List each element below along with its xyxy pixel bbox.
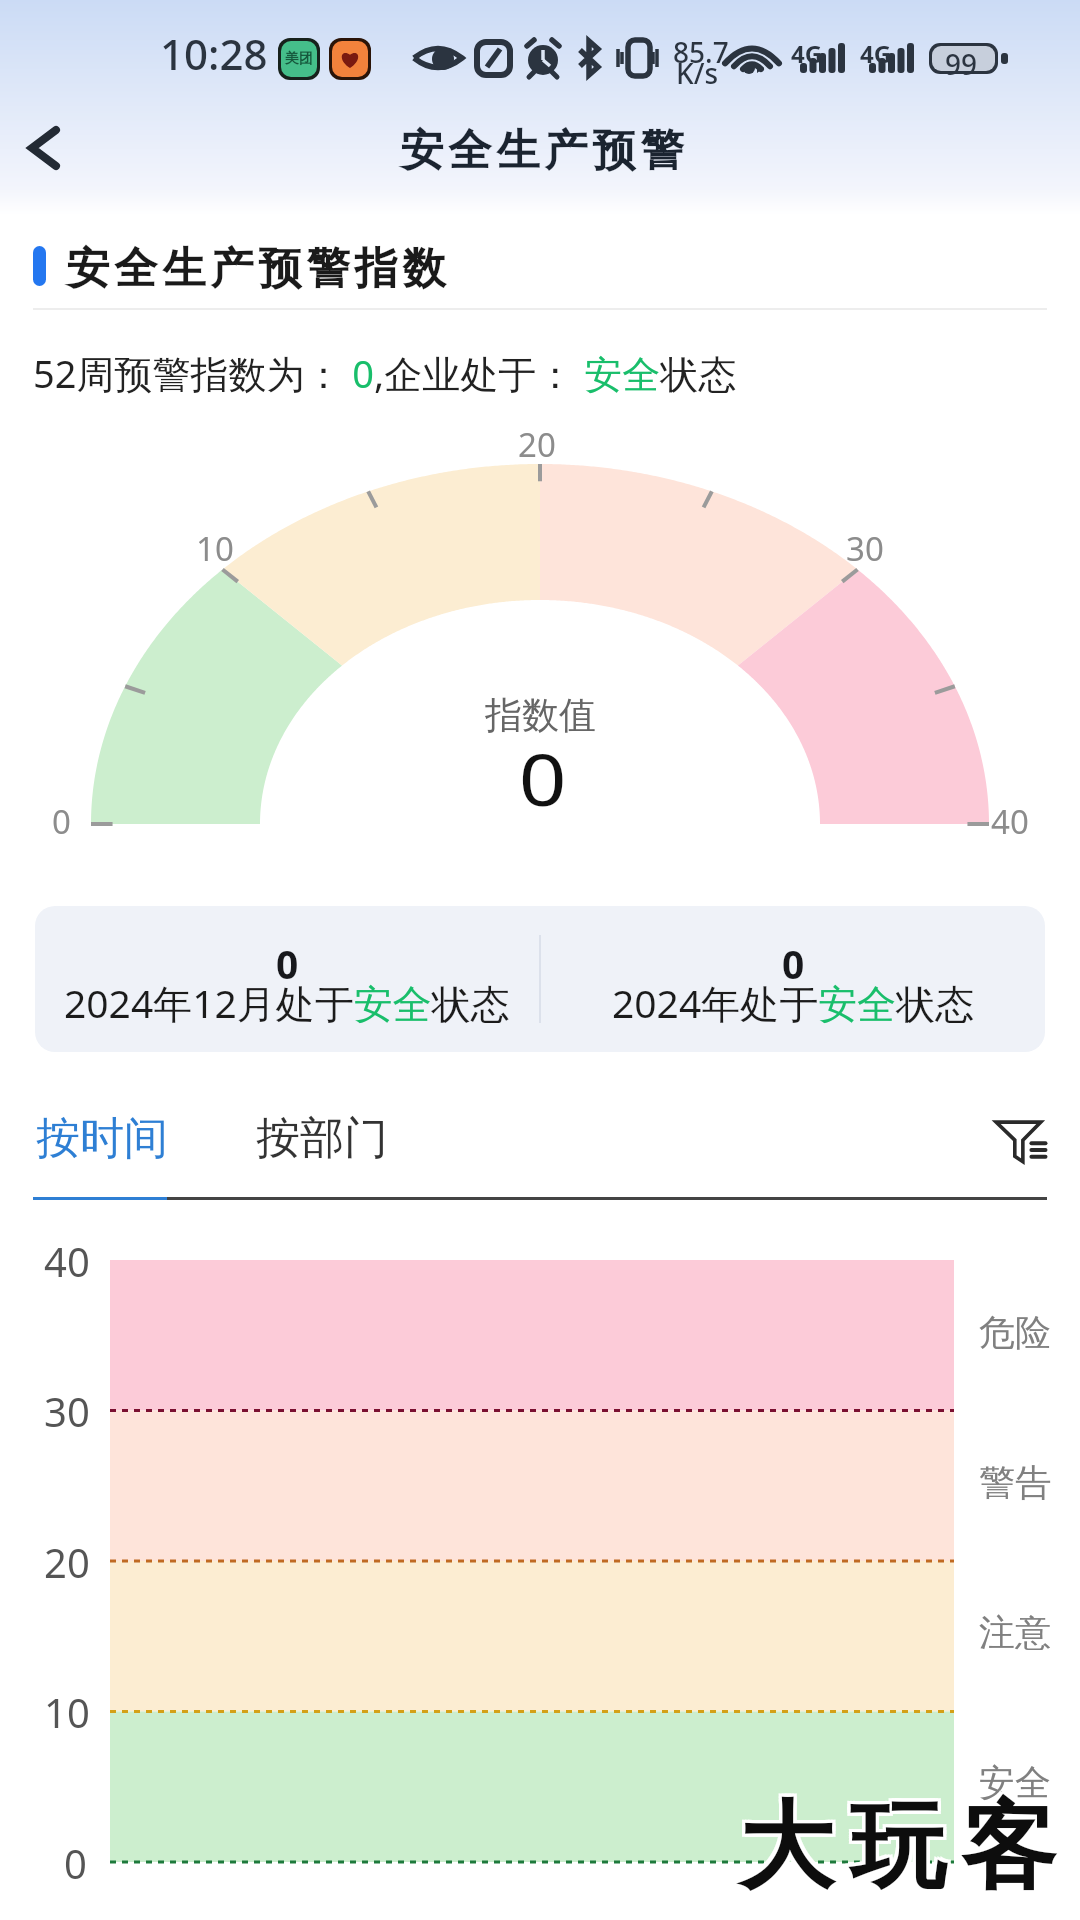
staticText: 注意: [979, 1610, 1051, 1655]
staticText: 10: [44, 1685, 90, 1739]
staticText: 52周预警指数为： 0,企业处于： 安全状态: [33, 347, 737, 399]
staticText: 0: [276, 937, 299, 990]
staticText: 10: [196, 526, 234, 571]
staticText: 85.7: [673, 33, 729, 71]
staticText: 2024年处于安全状态: [612, 976, 975, 1029]
staticText: K/s: [676, 54, 719, 92]
button[interactable]: 0: [35, 906, 539, 1052]
button[interactable]: 按时间: [22, 1092, 182, 1184]
staticText: 2024年12月处于安全状态: [64, 976, 510, 1029]
staticText: 大玩客: [728, 1791, 1061, 1911]
staticText: 安全生产预警指数: [64, 242, 448, 296]
staticText: 安全: [979, 1760, 1051, 1805]
staticText: 指数值: [485, 692, 596, 739]
staticText: 大玩客: [731, 1785, 1064, 1905]
staticText: 4G: [791, 37, 823, 70]
staticText: 大玩客: [728, 1788, 1061, 1908]
staticText: 美团: [285, 50, 313, 68]
staticText: 大玩客: [734, 1788, 1067, 1908]
staticText: 0: [64, 1836, 87, 1890]
staticText: 警告: [979, 1460, 1051, 1505]
staticText: 20: [44, 1535, 90, 1589]
button[interactable]: Filter: [975, 1096, 1065, 1186]
button[interactable]: 0: [541, 906, 1045, 1052]
staticText: 大玩客: [734, 1791, 1067, 1911]
staticText: 99: [945, 45, 978, 83]
staticText: 大玩客: [728, 1785, 1061, 1905]
staticText: 大玩客: [731, 1791, 1064, 1911]
staticText: 按部门: [256, 1111, 388, 1166]
staticText: 大玩客: [731, 1788, 1064, 1908]
staticText: 0: [519, 729, 567, 809]
staticText: 10:28: [160, 25, 268, 82]
staticText: 40: [44, 1234, 90, 1288]
staticText: 40: [991, 799, 1029, 844]
staticText: 30: [44, 1384, 90, 1438]
staticText: 30: [846, 526, 884, 571]
staticText: 0: [782, 937, 805, 990]
staticText: 20: [518, 422, 556, 467]
staticText: 安全生产预警: [398, 124, 686, 178]
staticText: 危险: [979, 1310, 1051, 1355]
button[interactable]: Back: [0, 95, 97, 201]
staticText: 4G: [860, 37, 892, 70]
staticText: 按时间: [36, 1111, 168, 1166]
staticText: 0: [52, 799, 71, 844]
button[interactable]: 按部门: [239, 1092, 404, 1184]
staticText: 大玩客: [734, 1785, 1067, 1905]
